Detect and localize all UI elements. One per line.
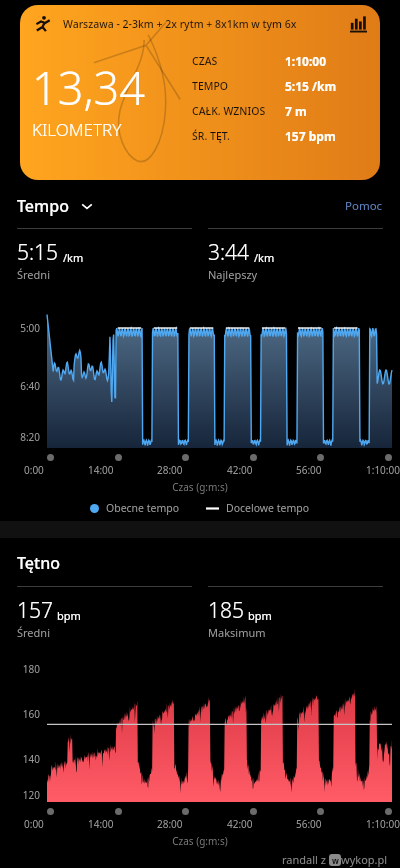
staticText: 0:00 (24, 463, 44, 477)
staticText: TEMPO (192, 79, 285, 93)
button[interactable]: 185 (208, 586, 383, 640)
staticText: Pomoc (345, 198, 383, 214)
staticText: /km (63, 250, 84, 265)
staticText: Warszawa - 2-3km + 2x rytm + 8x1km w tym… (63, 17, 344, 31)
staticText: 42:00 (227, 817, 253, 831)
staticText: 14:00 (88, 463, 114, 477)
staticText: bpm (248, 608, 272, 623)
staticText: 157 (17, 596, 53, 625)
staticText: Średni (17, 267, 50, 282)
staticText: 28:00 (157, 817, 183, 831)
staticText: 120 (0, 788, 40, 802)
staticText: w (332, 855, 339, 866)
staticText: Obecne tempo (106, 501, 180, 515)
staticText: wykop.pl (341, 852, 388, 867)
button[interactable]: Statistics (348, 14, 368, 34)
staticText: 5:00 (0, 321, 40, 335)
button[interactable]: Pomoc (345, 198, 383, 214)
button[interactable]: 3:44 (208, 228, 383, 282)
staticText: 5:15 (17, 238, 59, 267)
staticText: 160 (0, 707, 40, 721)
staticText: Tempo (17, 195, 69, 217)
staticText: Czas (g:m:s) (0, 480, 400, 494)
staticText: randall z (282, 852, 329, 867)
staticText: 140 (0, 752, 40, 766)
staticText: Średni (17, 625, 50, 640)
staticText: Tętno (17, 552, 60, 574)
staticText: 1:10:00 (366, 463, 400, 477)
staticText: 185 (208, 596, 244, 625)
button[interactable]: 157 (17, 586, 192, 640)
staticText: 7 m (285, 103, 307, 119)
staticText: Maksimum (208, 625, 266, 640)
staticText: 6:40 (0, 379, 40, 393)
staticText: KILOMETRY (32, 118, 122, 141)
staticText: CAŁK. WZNIOS (192, 104, 285, 118)
staticText: 157 bpm (285, 128, 336, 144)
staticText: 3:44 (208, 238, 250, 267)
staticText: 180 (0, 662, 40, 676)
staticText: 1:10:00 (366, 817, 400, 831)
staticText: Docelowe tempo (226, 501, 310, 515)
staticText: Czas (g:m:s) (0, 834, 400, 848)
button[interactable]: Tempo (17, 195, 93, 217)
staticText: 0:00 (24, 817, 44, 831)
button[interactable]: 5:15 (17, 228, 192, 282)
staticText: 56:00 (296, 463, 322, 477)
staticText: CZAS (192, 54, 285, 68)
staticText: ŚR. TĘT. (192, 129, 285, 143)
staticText: 5:15 /km (285, 78, 337, 94)
button[interactable]: Warszawa - 2-3km + 2x rytm + 8x1km w tym… (20, 5, 380, 180)
staticText: 14:00 (88, 817, 114, 831)
staticText: 56:00 (296, 817, 322, 831)
staticText: 28:00 (157, 463, 183, 477)
staticText: 42:00 (227, 463, 253, 477)
staticText: 1:10:00 (285, 53, 327, 69)
staticText: 13,34 (32, 57, 145, 118)
staticText: bpm (57, 608, 81, 623)
staticText: Najlepszy (208, 267, 258, 282)
staticText: 8:20 (0, 430, 40, 444)
staticText: /km (254, 250, 275, 265)
